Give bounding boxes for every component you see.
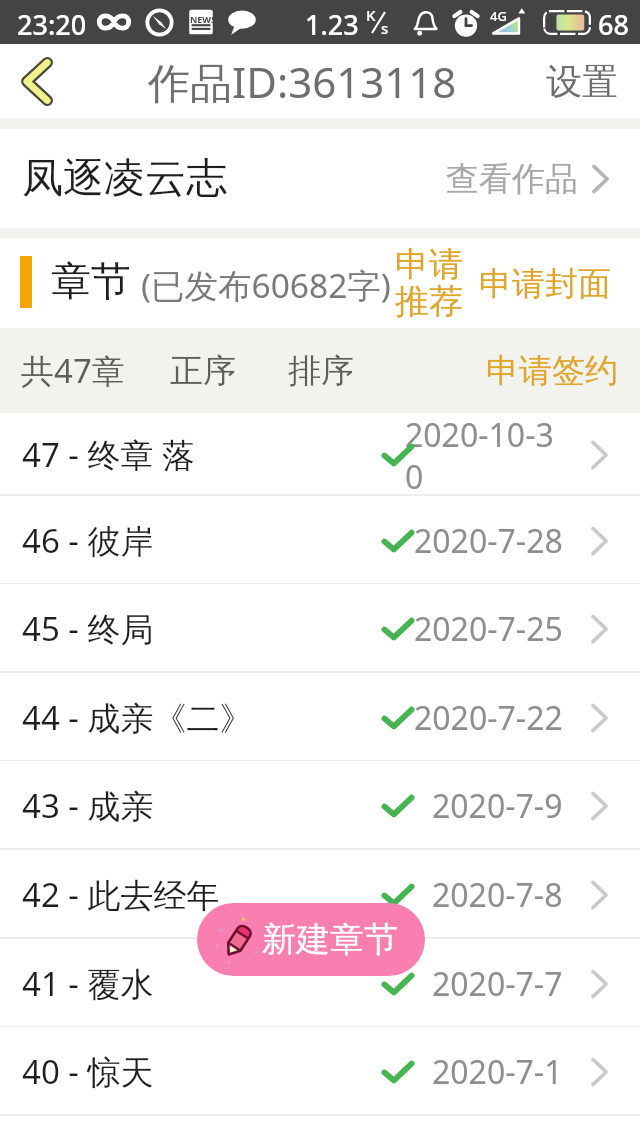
- staticText: 23:20: [17, 6, 87, 43]
- staticText: 2020-7-22: [414, 696, 563, 740]
- staticText: 作品ID:3613118: [148, 53, 457, 110]
- staticText: 申请签约: [486, 350, 618, 392]
- staticText: 申请 推荐: [395, 243, 463, 323]
- button[interactable]: 46 - 彼岸: [0, 496, 640, 585]
- staticText: 46 - 彼岸: [22, 518, 154, 563]
- staticText: 排序: [288, 350, 354, 392]
- staticText: (已发布60682字): [141, 262, 391, 308]
- staticText: 2020-10-30: [405, 413, 563, 496]
- staticText: 2020-7-7: [432, 962, 563, 1006]
- staticText: 新建章节: [262, 918, 398, 961]
- staticText: 申请封面: [479, 263, 611, 305]
- button[interactable]: 凤逐凌云志: [0, 129, 640, 228]
- staticText: 2020-7-8: [432, 873, 563, 917]
- button[interactable]: 正序: [170, 350, 236, 392]
- staticText: 4G: [490, 7, 507, 25]
- button[interactable]: 47 - 终章 落: [0, 413, 640, 496]
- button[interactable]: 45 - 终局: [0, 584, 640, 673]
- button[interactable]: 新建章节: [197, 903, 425, 976]
- button[interactable]: 43 - 成亲: [0, 761, 640, 850]
- button[interactable]: 41 - 覆水: [0, 939, 640, 1028]
- button[interactable]: 申请 推荐: [394, 242, 464, 324]
- staticText: 45 - 终局: [22, 606, 154, 651]
- staticText: 68: [598, 6, 629, 43]
- staticText: 40 - 惊天: [22, 1049, 154, 1094]
- staticText: 47 - 终章 落: [22, 432, 196, 477]
- button[interactable]: Back: [0, 44, 74, 118]
- staticText: 43 - 成亲: [22, 783, 154, 828]
- staticText: 正序: [170, 350, 236, 392]
- staticText: 查看作品: [446, 158, 578, 200]
- staticText: NEWS: [190, 13, 217, 25]
- staticText: 2020-7-28: [414, 519, 563, 563]
- button[interactable]: 40 - 惊天: [0, 1027, 640, 1116]
- button[interactable]: 排序: [288, 350, 354, 392]
- button[interactable]: 44 - 成亲《二》: [0, 673, 640, 762]
- button[interactable]: 设置: [524, 44, 640, 118]
- staticText: 2020-7-25: [414, 607, 563, 651]
- staticText: 42 - 此去经年: [22, 872, 220, 917]
- button[interactable]: 申请封面: [478, 262, 612, 306]
- staticText: 41 - 覆水: [22, 961, 154, 1006]
- staticText: 凤逐凌云志: [22, 153, 227, 205]
- staticText: 设置: [546, 59, 618, 104]
- staticText: s: [381, 18, 389, 38]
- staticText: 1.23: [305, 6, 359, 43]
- staticText: 2020-7-9: [432, 784, 563, 828]
- button[interactable]: 42 - 此去经年: [0, 850, 640, 939]
- staticText: 共47章: [21, 348, 125, 393]
- staticText: 2020-7-1: [432, 1050, 563, 1094]
- staticText: K: [366, 5, 376, 25]
- button[interactable]: 申请签约: [486, 350, 618, 392]
- staticText: 44 - 成亲《二》: [22, 695, 253, 740]
- staticText: 章节: [51, 256, 131, 306]
